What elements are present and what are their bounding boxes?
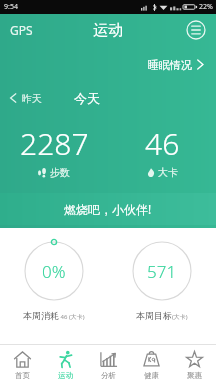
button[interactable]: 健康 bbox=[130, 345, 173, 384]
button[interactable]: 睡眠情况 bbox=[144, 54, 210, 75]
button[interactable]: 昨天 bbox=[0, 88, 48, 108]
button[interactable]: 聚惠 bbox=[173, 345, 216, 384]
staticText: 健康 bbox=[144, 371, 159, 380]
staticText: 46 bbox=[145, 123, 180, 164]
staticText: 睡眠情况 bbox=[148, 58, 192, 72]
staticText: 本周消耗 bbox=[23, 310, 59, 321]
staticText: GPS bbox=[10, 22, 33, 38]
staticText: 22% bbox=[199, 2, 213, 12]
staticText: 本周目标 bbox=[136, 310, 172, 321]
staticText: 分析 bbox=[101, 371, 116, 380]
staticText: 步数 bbox=[50, 166, 70, 179]
staticText: 运动 bbox=[93, 21, 123, 40]
staticText: 46 (大卡) bbox=[59, 313, 85, 321]
button[interactable]: 今天 bbox=[70, 87, 104, 109]
staticText: 昨天 bbox=[22, 92, 42, 105]
staticText: (大卡) bbox=[172, 313, 188, 321]
staticText: 0% bbox=[42, 260, 66, 283]
button[interactable]: 0% bbox=[0, 240, 108, 321]
button[interactable]: 分析 bbox=[87, 345, 130, 384]
staticText: 今天 bbox=[74, 90, 100, 106]
button[interactable]: 571 bbox=[108, 240, 216, 321]
staticText: 聚惠 bbox=[187, 371, 202, 380]
button[interactable]: GPS bbox=[0, 18, 43, 42]
staticText: 运动 bbox=[58, 371, 73, 380]
staticText: 571 bbox=[147, 260, 177, 283]
staticText: 燃烧吧，小伙伴! bbox=[64, 201, 152, 217]
staticText: 2287 bbox=[20, 123, 89, 164]
button[interactable]: 燃烧吧，小伙伴! bbox=[0, 193, 216, 225]
button[interactable]: Menu bbox=[184, 18, 208, 42]
staticText: 大卡 bbox=[158, 166, 178, 179]
button[interactable]: 首页 bbox=[0, 345, 44, 384]
button[interactable]: 运动 bbox=[44, 345, 87, 384]
staticText: 首页 bbox=[15, 371, 30, 380]
staticText: 9:54 bbox=[4, 2, 18, 12]
